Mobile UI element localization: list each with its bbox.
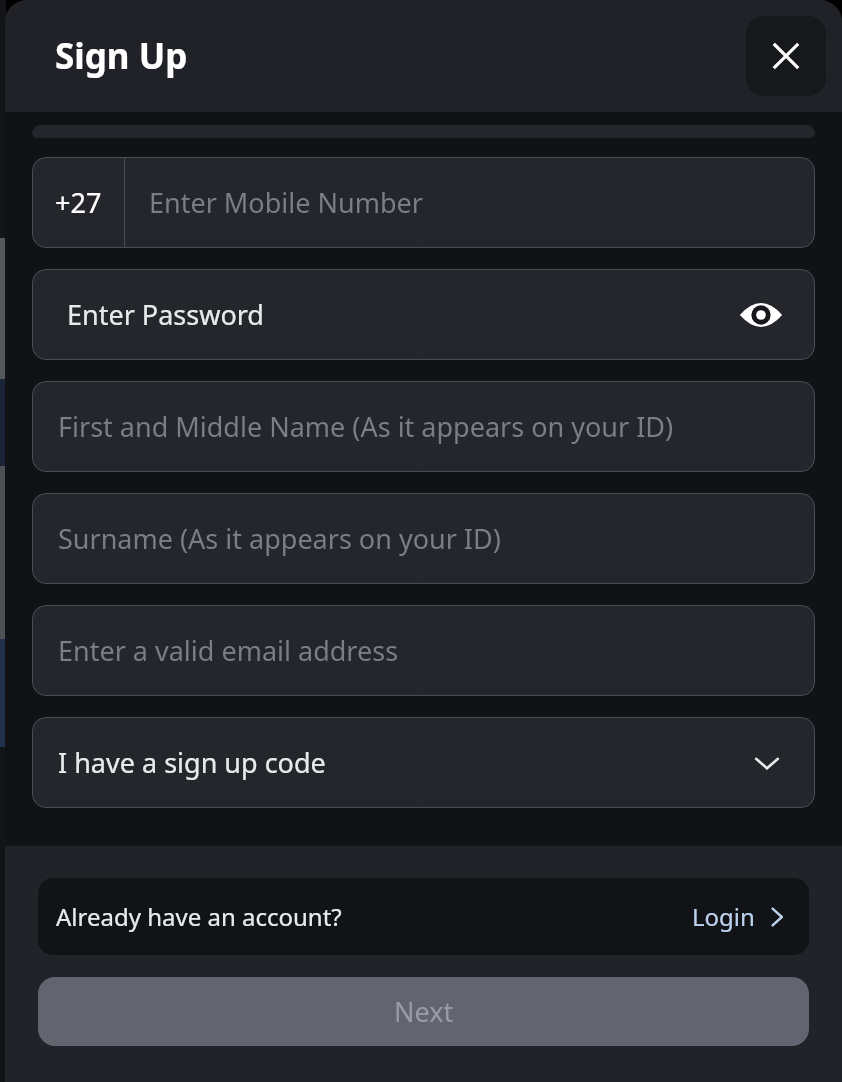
button[interactable]: Show password <box>735 289 787 341</box>
staticText: Enter a valid email address <box>58 632 399 669</box>
button[interactable]: Enter a valid email address <box>32 605 815 696</box>
staticText: Sign Up <box>55 32 188 80</box>
staticText: First and Middle Name (As it appears on … <box>58 408 674 445</box>
button[interactable]: Surname (As it appears on your ID) <box>32 493 815 584</box>
staticText: Enter Password <box>67 296 264 333</box>
staticText: Already have an account? <box>56 900 342 933</box>
button[interactable]: Next <box>38 977 809 1046</box>
button[interactable]: +27 <box>32 157 815 248</box>
button[interactable]: Enter Password <box>32 269 815 360</box>
staticText: I have a sign up code <box>58 744 326 781</box>
button[interactable]: Already have an account? <box>38 878 809 955</box>
staticText: Login <box>692 900 755 933</box>
button[interactable]: First and Middle Name (As it appears on … <box>32 381 815 472</box>
staticText: Enter Mobile Number <box>149 184 423 221</box>
staticText: Surname (As it appears on your ID) <box>58 520 501 557</box>
staticText: Next <box>394 993 454 1030</box>
staticText: +27 <box>55 184 102 221</box>
button[interactable]: Close <box>746 16 826 96</box>
button[interactable]: I have a sign up code <box>32 717 815 808</box>
